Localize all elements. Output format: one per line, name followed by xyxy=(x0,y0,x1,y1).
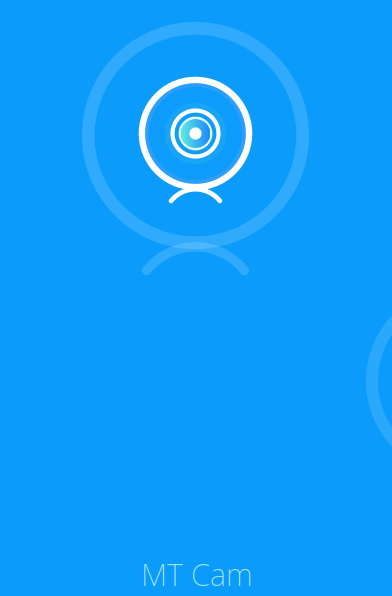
staticText: MT Cam xyxy=(141,554,253,594)
